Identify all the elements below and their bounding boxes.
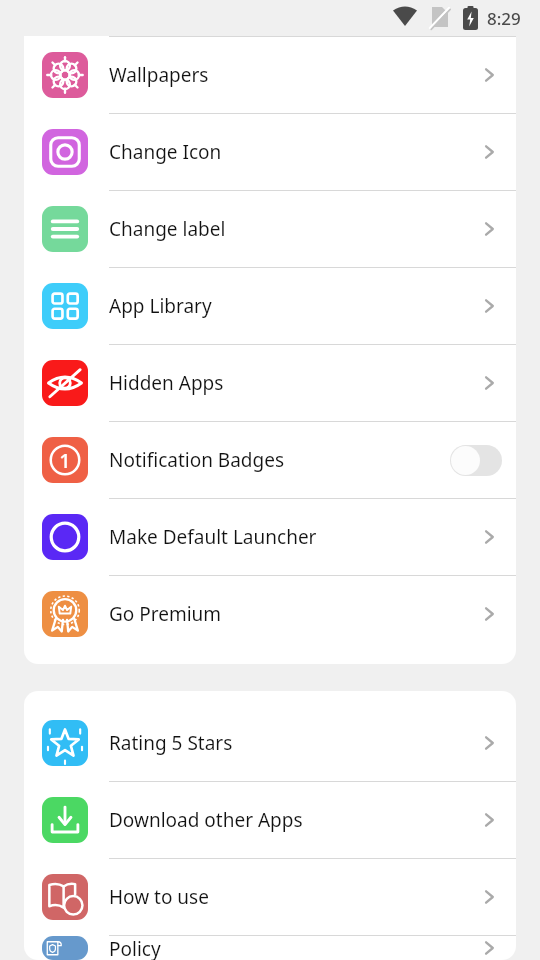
staticText: Change label <box>109 216 480 242</box>
button[interactable]: Wallpapers <box>24 37 516 113</box>
staticText: Hidden Apps <box>109 370 480 396</box>
staticText: 8:29 <box>487 7 521 30</box>
staticText: Notification Badges <box>109 447 450 473</box>
staticText: How to use <box>109 884 480 910</box>
staticText: Policy <box>109 936 480 960</box>
staticText: Make Default Launcher <box>109 524 480 550</box>
staticText: App Library <box>109 293 480 319</box>
button[interactable] <box>450 445 502 476</box>
button[interactable]: How to use <box>24 859 516 935</box>
button[interactable]: Make Default Launcher <box>24 499 516 575</box>
button[interactable]: Rating 5 Stars <box>24 705 516 781</box>
button[interactable]: Download other Apps <box>24 782 516 858</box>
staticText: Change Icon <box>109 139 480 165</box>
staticText: Download other Apps <box>109 807 480 833</box>
staticText: Wallpapers <box>109 62 480 88</box>
staticText: Rating 5 Stars <box>109 730 480 756</box>
button[interactable]: Change label <box>24 191 516 267</box>
staticText: Go Premium <box>109 601 480 627</box>
button[interactable]: Change Icon <box>24 114 516 190</box>
button[interactable]: Policy <box>24 936 516 960</box>
button[interactable]: 1 <box>24 422 516 498</box>
button[interactable]: App Library <box>24 268 516 344</box>
button[interactable]: Hidden Apps <box>24 345 516 421</box>
button[interactable]: Go Premium <box>24 576 516 652</box>
staticText: 1 <box>59 447 71 474</box>
